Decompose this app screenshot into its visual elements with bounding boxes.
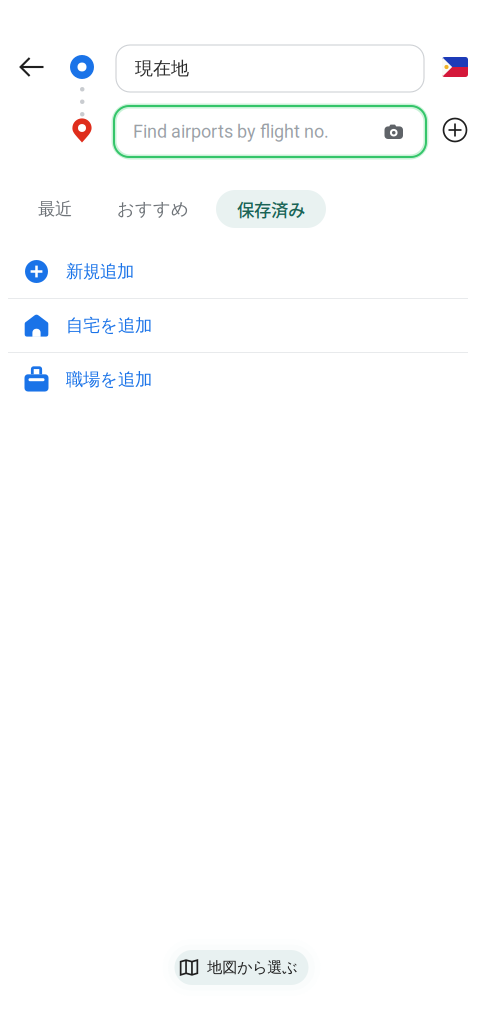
button[interactable]: 保存済み (216, 190, 326, 228)
button[interactable]: Back (8, 44, 56, 90)
button[interactable]: 新規追加 (0, 245, 483, 299)
staticText: 現在地 (135, 57, 189, 80)
staticText: Find airports by flight no. (133, 121, 329, 142)
staticText: 保存済み (237, 196, 305, 222)
button[interactable]: Find airports by flight no. (114, 106, 426, 157)
button[interactable]: Region (435, 45, 475, 89)
button[interactable]: 職場を追加 (0, 353, 483, 407)
button[interactable]: 現在地 (116, 45, 424, 92)
staticText: 新規追加 (66, 261, 134, 282)
staticText: おすすめ (117, 198, 189, 220)
staticText: 地図から選ぶ (207, 958, 297, 977)
button[interactable]: Add stop (435, 110, 475, 150)
staticText: 自宅を追加 (66, 315, 152, 336)
staticText: 最近 (38, 198, 72, 220)
button[interactable]: おすすめ (99, 190, 207, 228)
button[interactable]: 自宅を追加 (0, 299, 483, 353)
button[interactable]: 最近 (20, 190, 90, 228)
button[interactable]: 地図から選ぶ (174, 950, 308, 985)
staticText: 職場を追加 (66, 369, 152, 390)
